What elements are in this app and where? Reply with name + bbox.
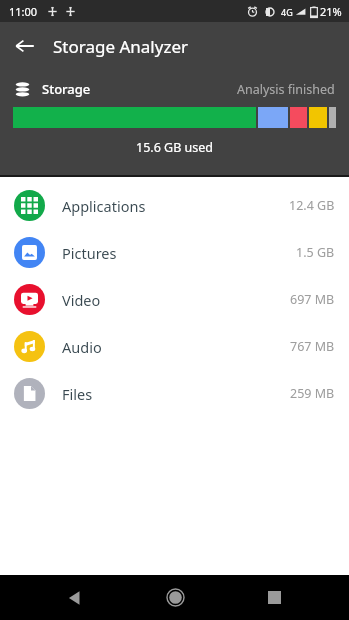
staticText: Storage Analyzer: [53, 35, 188, 58]
staticText: Video: [62, 290, 101, 310]
staticText: 259 MB: [290, 385, 335, 402]
button[interactable]: Pictures: [0, 229, 349, 276]
button[interactable]: Audio: [0, 323, 349, 370]
button[interactable]: Home: [151, 575, 199, 620]
staticText: Audio: [62, 337, 102, 357]
staticText: 11:00: [9, 4, 38, 19]
staticText: 15.6 GB used: [136, 139, 213, 156]
button[interactable]: Back: [51, 575, 99, 620]
staticText: Files: [62, 384, 93, 404]
staticText: Pictures: [62, 243, 117, 263]
staticText: 4G: [281, 6, 293, 18]
button[interactable]: Files: [0, 370, 349, 417]
staticText: Storage: [42, 80, 91, 98]
staticText: 697 MB: [290, 291, 335, 308]
staticText: Analysis finished: [237, 81, 335, 98]
staticText: Applications: [62, 196, 146, 216]
button[interactable]: Video: [0, 276, 349, 323]
staticText: 12.4 GB: [289, 197, 335, 214]
staticText: 21%: [320, 4, 342, 19]
staticText: 767 MB: [290, 338, 335, 355]
staticText: 1.5 GB: [296, 244, 335, 261]
button[interactable]: Back: [8, 29, 42, 63]
button[interactable]: Recent apps: [250, 575, 298, 620]
button[interactable]: Applications: [0, 182, 349, 229]
